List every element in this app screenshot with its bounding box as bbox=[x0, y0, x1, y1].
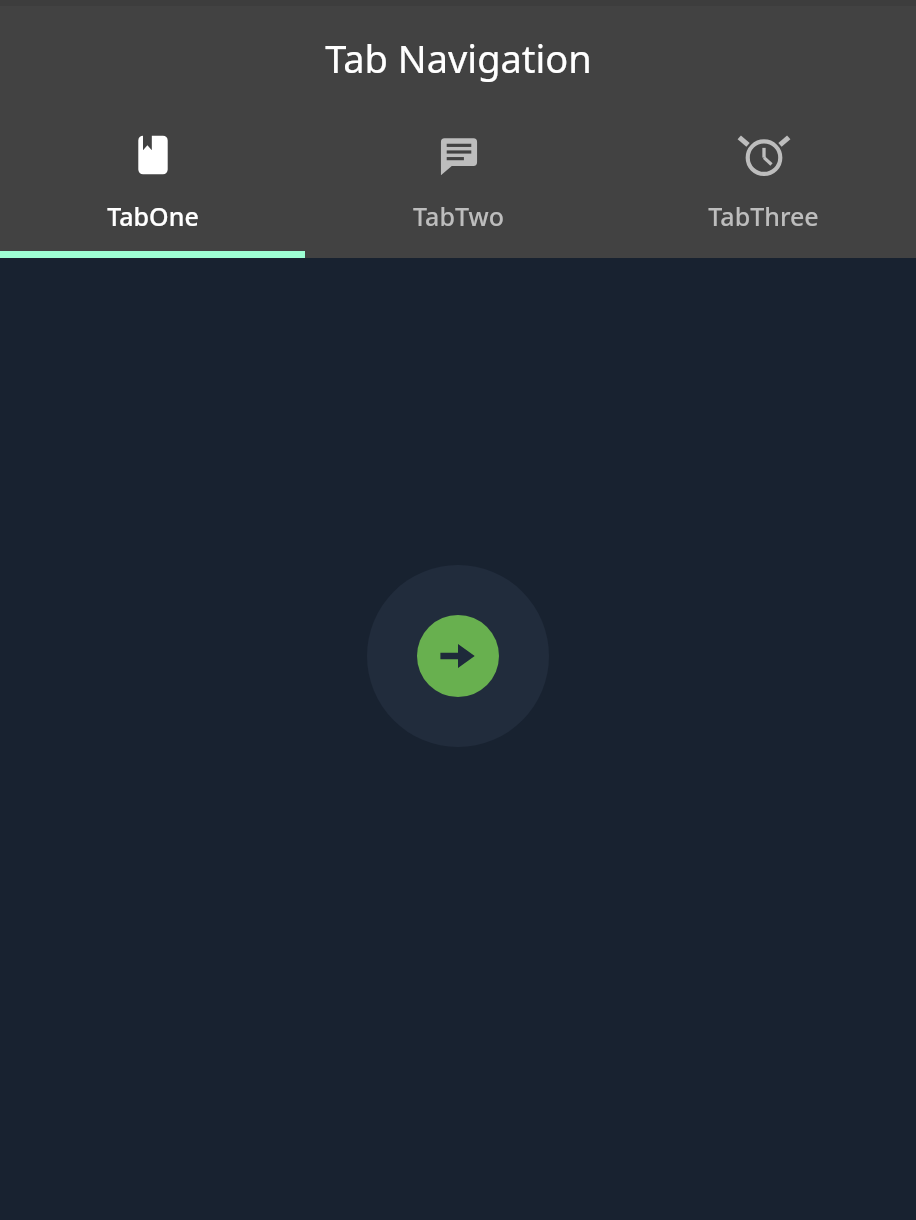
button[interactable]: TabThree bbox=[611, 110, 916, 251]
button[interactable]: TabTwo bbox=[306, 110, 611, 251]
button[interactable]: TabOne bbox=[0, 110, 306, 251]
button[interactable]: Next bbox=[367, 565, 549, 747]
staticText: TabThree bbox=[708, 199, 819, 233]
staticText: TabTwo bbox=[413, 199, 504, 233]
staticText: Tab Navigation bbox=[325, 32, 592, 84]
staticText: TabOne bbox=[107, 199, 199, 233]
